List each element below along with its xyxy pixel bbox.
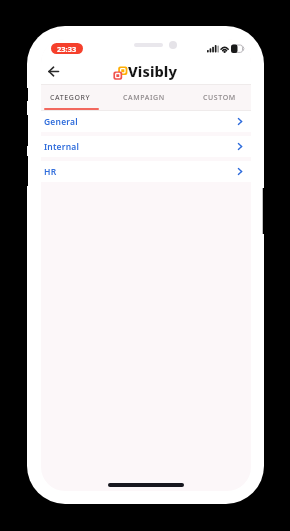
- staticText: CATEGORY: [50, 93, 91, 103]
- staticText: General: [44, 116, 78, 128]
- button[interactable]: CUSTOM: [181, 85, 251, 110]
- button[interactable]: CAMPAIGN: [111, 85, 181, 110]
- staticText: Internal: [44, 141, 80, 153]
- staticText: HR: [44, 166, 57, 178]
- button[interactable]: General: [41, 111, 251, 132]
- staticText: CUSTOM: [203, 93, 236, 103]
- button[interactable]: HR: [41, 161, 251, 182]
- staticText: 23:33: [57, 44, 77, 54]
- button[interactable]: CATEGORY: [41, 85, 111, 110]
- button[interactable]: Internal: [41, 136, 251, 157]
- button[interactable]: [44, 62, 62, 80]
- button[interactable]: 23:33: [51, 43, 83, 54]
- staticText: CAMPAIGN: [123, 93, 165, 103]
- staticText: Visibly: [128, 61, 178, 81]
